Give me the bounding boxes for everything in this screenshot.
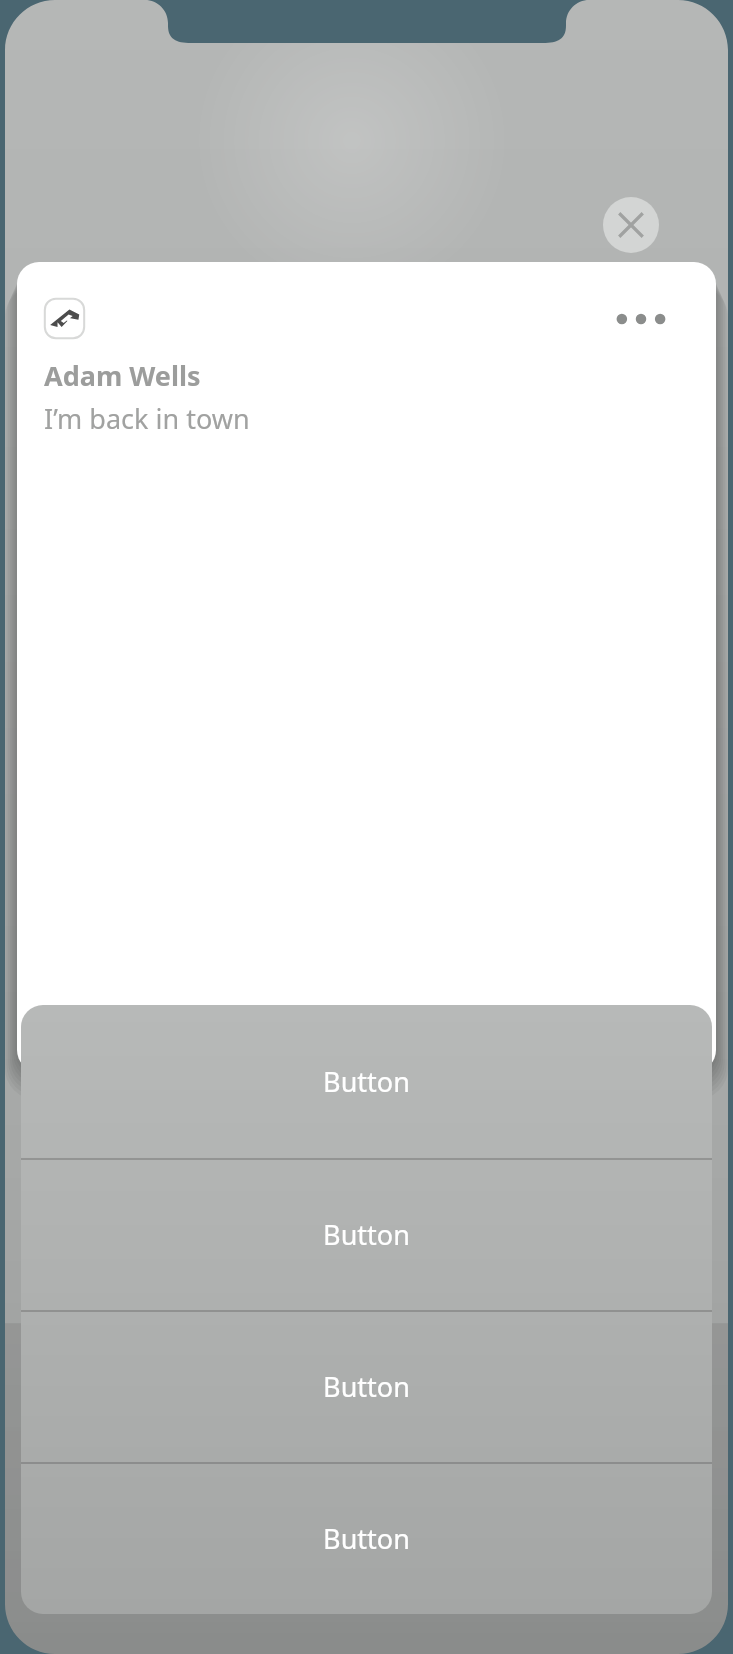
staticText: Button [323,1063,410,1100]
button[interactable]: Button [21,1462,712,1614]
button[interactable]: Close [603,197,659,253]
staticText: I’m back in town [44,400,250,437]
staticText: Adam Wells [44,357,201,394]
button[interactable]: App icon [17,262,716,1072]
staticText: Button [323,1368,410,1405]
button[interactable]: More options [612,302,670,336]
staticText: Button [323,1520,410,1557]
button[interactable]: App icon [44,298,85,339]
button[interactable]: Button [21,1005,712,1158]
button[interactable]: Button [21,1158,712,1310]
staticText: Button [323,1216,410,1253]
button[interactable]: Button [21,1310,712,1462]
